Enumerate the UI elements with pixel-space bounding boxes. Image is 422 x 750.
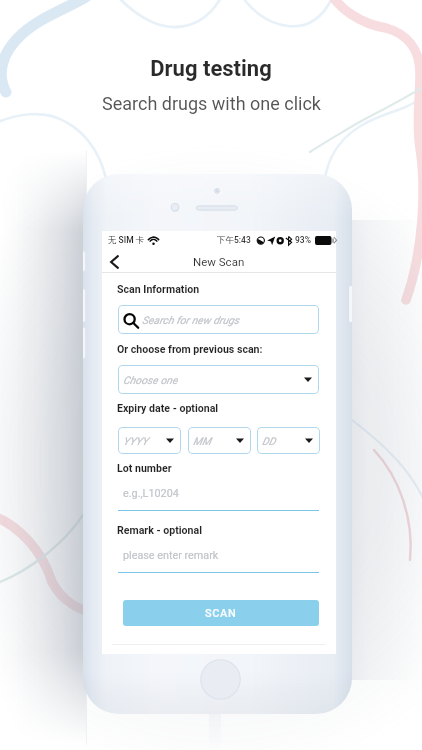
staticText: please enter remark — [123, 549, 219, 562]
staticText: e.g.,L10204 — [123, 487, 179, 500]
staticText: Choose one — [123, 374, 178, 386]
staticText: SCAN — [205, 607, 237, 620]
button[interactable]: Choose one — [118, 365, 319, 394]
button[interactable]: SCAN — [123, 600, 319, 626]
staticText: Lot number — [117, 462, 172, 474]
button[interactable]: please enter remark — [118, 549, 319, 573]
staticText: MM — [193, 435, 211, 447]
staticText: Search for new drugs — [142, 314, 240, 326]
button[interactable]: DD — [257, 427, 320, 454]
button[interactable]: MM — [188, 427, 251, 454]
staticText: 下午5:43 — [217, 235, 251, 246]
staticText: Drug testing — [150, 56, 272, 82]
staticText: 无 SIM 卡 — [108, 235, 145, 246]
button[interactable]: YYYY — [118, 427, 181, 454]
staticText: Or choose from previous scan: — [117, 343, 263, 355]
staticText: YYYY — [123, 435, 148, 447]
staticText: Scan Information — [117, 283, 200, 295]
staticText: DD — [262, 435, 276, 447]
staticText: Search drugs with one click — [102, 93, 321, 114]
staticText: Expiry date - optional — [117, 402, 219, 414]
button[interactable]: e.g.,L10204 — [118, 487, 319, 511]
button[interactable]: Search for new drugs — [118, 305, 319, 334]
staticText: 93% — [295, 235, 311, 245]
button[interactable]: Back — [102, 250, 126, 273]
staticText: Remark - optional — [117, 524, 203, 536]
staticText: New Scan — [193, 255, 245, 268]
